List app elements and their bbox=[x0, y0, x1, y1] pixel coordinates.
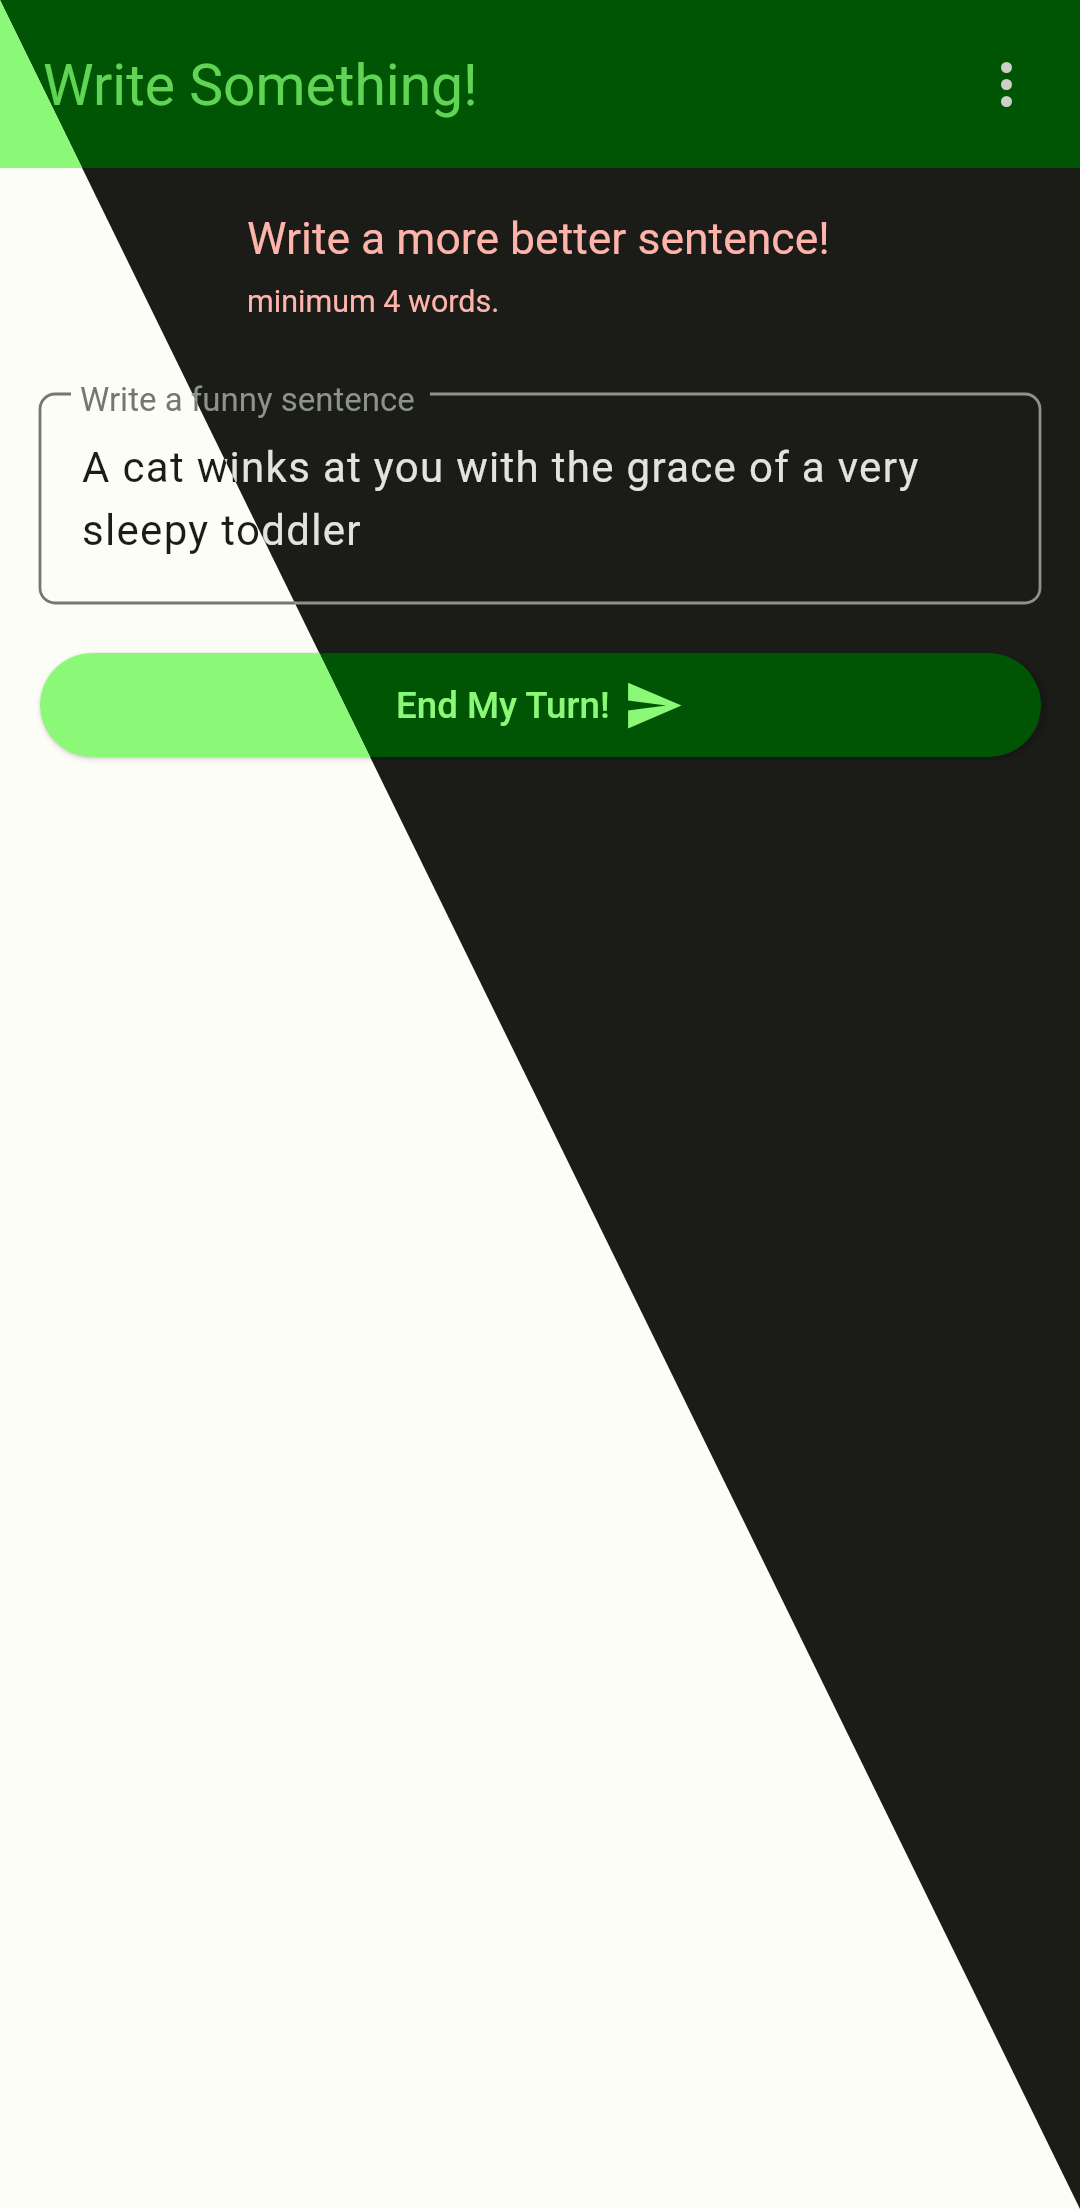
staticText: A cat winks at you with the grace of a v… bbox=[82, 432, 952, 558]
staticText: Write a more better sentence! bbox=[247, 208, 830, 266]
staticText: A cat winks at you with the grace of a v… bbox=[82, 432, 952, 558]
staticText: End My Turn! bbox=[396, 680, 610, 728]
staticText: minimum 4 words. bbox=[247, 279, 500, 321]
button[interactable]: End My Turn! bbox=[40, 653, 1041, 757]
staticText: Write a funny sentence bbox=[80, 384, 415, 418]
staticText: End My Turn! bbox=[396, 680, 610, 728]
staticText: Write a funny sentence bbox=[80, 384, 415, 418]
button[interactable]: More options bbox=[953, 31, 1059, 137]
staticText: Write a more better sentence! bbox=[247, 208, 830, 266]
staticText: Write Something! bbox=[43, 46, 478, 121]
button[interactable]: Write a funny sentence bbox=[40, 394, 1040, 603]
staticText: Write Something! bbox=[43, 46, 478, 121]
staticText: minimum 4 words. bbox=[247, 279, 500, 321]
